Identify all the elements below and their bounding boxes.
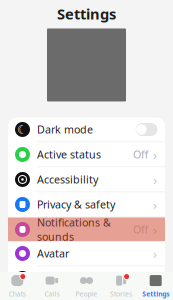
staticText: Avatar [37, 246, 69, 261]
button[interactable]: Privacy & safety [8, 192, 165, 216]
button[interactable]: Accessibility [8, 167, 165, 191]
button[interactable]: Chats [0, 272, 35, 300]
button[interactable]: Calls [35, 272, 69, 300]
button[interactable]: Notifications & sounds [8, 217, 165, 241]
staticText: Stories [110, 290, 132, 298]
staticText: › [153, 196, 157, 213]
staticText: Settings [142, 290, 169, 298]
staticText: Active status [37, 147, 101, 162]
button[interactable]: People [69, 272, 104, 300]
button[interactable]: Settings [138, 272, 173, 300]
staticText: Dark mode [37, 122, 93, 137]
staticText: Off [133, 147, 148, 162]
button[interactable]: Avatar [8, 241, 165, 265]
staticText: Settings [57, 4, 116, 23]
staticText: › [153, 221, 157, 238]
staticText: › [153, 146, 157, 163]
staticText: ☾ [17, 123, 28, 136]
staticText: ☾ [17, 272, 28, 285]
staticText: › [153, 270, 157, 287]
button[interactable]: ☾ [8, 117, 165, 141]
staticText: › [153, 171, 157, 188]
button[interactable]: Stories [104, 272, 138, 300]
staticText: Privacy & safety [37, 197, 115, 212]
button[interactable]: Active status [8, 142, 165, 166]
staticText: Accessibility [37, 172, 98, 187]
staticText: Off [133, 222, 148, 237]
staticText: People [75, 290, 97, 298]
staticText: Notifications & sounds [37, 215, 111, 244]
button[interactable]: ☾ [8, 266, 165, 290]
staticText: › [153, 245, 157, 262]
staticText: Calls [44, 290, 59, 298]
staticText: Theme [37, 271, 72, 286]
staticText: Chats [9, 290, 26, 298]
